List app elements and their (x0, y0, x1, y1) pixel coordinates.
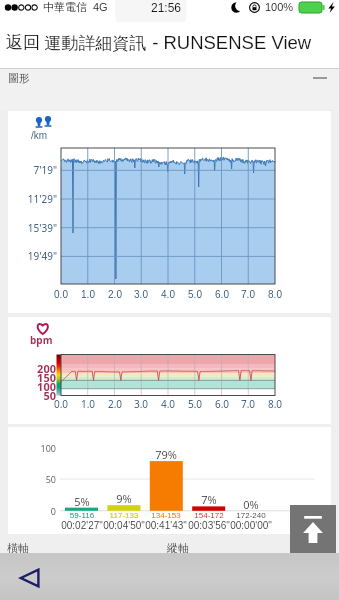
staticText: 4.0 (157, 397, 179, 411)
staticText: 11'29" (11, 192, 57, 206)
staticText: 3.0 (130, 289, 152, 300)
staticText: 100 (18, 379, 56, 394)
staticText: 117-133 (98, 511, 150, 520)
staticText: 6.0 (211, 397, 233, 411)
staticText: 5.0 (184, 289, 206, 300)
staticText: 00:41'43" (136, 520, 196, 531)
staticText: 中華電信 (43, 0, 87, 14)
staticText: 172-240 (225, 511, 277, 520)
staticText: 00:00'00" (221, 520, 281, 531)
staticText: 50 (18, 388, 56, 403)
staticText: 59-116 (56, 511, 108, 520)
staticText: bpm (30, 333, 53, 347)
staticText: 縱軸 (167, 541, 189, 555)
staticText: 8.0 (264, 397, 286, 411)
staticText: 5.0 (184, 397, 206, 411)
staticText: 運動詳細資訊 (40, 31, 147, 54)
button[interactable]: 返回 (0, 31, 40, 54)
staticText: 0 (16, 505, 56, 517)
staticText: 7.0 (237, 289, 259, 300)
staticText: /km (31, 130, 48, 141)
staticText: 00:02'27" (52, 520, 112, 531)
staticText: - RUNSENSE View (147, 32, 312, 53)
staticText: 2.0 (104, 397, 126, 411)
staticText: 79% (142, 447, 190, 462)
staticText: 0.0 (50, 397, 72, 411)
button[interactable]: Back (14, 562, 46, 594)
staticText: 7'19" (11, 163, 57, 177)
staticText: 返回 (6, 32, 40, 53)
staticText: 2.0 (104, 289, 126, 300)
staticText: 4G (93, 1, 108, 13)
staticText: 50 (16, 473, 56, 485)
staticText: 圖形 (8, 71, 30, 85)
staticText: 00:04'50" (94, 520, 154, 531)
staticText: 6.0 (211, 289, 233, 300)
staticText: 00:03'56" (179, 520, 239, 531)
staticText: 15'39" (11, 221, 57, 235)
staticText: 9% (100, 491, 148, 506)
staticText: 5% (58, 494, 106, 509)
staticText: 橫軸 (7, 541, 29, 555)
staticText: 19'49" (11, 249, 57, 263)
staticText: 21:56 (151, 1, 182, 14)
staticText: 7.0 (237, 397, 259, 411)
staticText: 8.0 (264, 289, 286, 300)
staticText: 1.0 (77, 289, 99, 300)
staticText: 1.0 (77, 397, 99, 411)
staticText: 100% (265, 1, 294, 13)
staticText: 200 (18, 361, 56, 376)
staticText: 7% (185, 492, 233, 507)
staticText: 150 (18, 370, 56, 385)
button[interactable]: Scroll to top (290, 505, 336, 553)
staticText: 154-172 (183, 511, 235, 520)
staticText: 0.0 (50, 289, 72, 300)
staticText: 4.0 (157, 289, 179, 300)
staticText: 0% (227, 497, 275, 512)
staticText: 134-153 (140, 511, 192, 520)
staticText: 3.0 (130, 397, 152, 411)
staticText: 100 (16, 442, 56, 454)
